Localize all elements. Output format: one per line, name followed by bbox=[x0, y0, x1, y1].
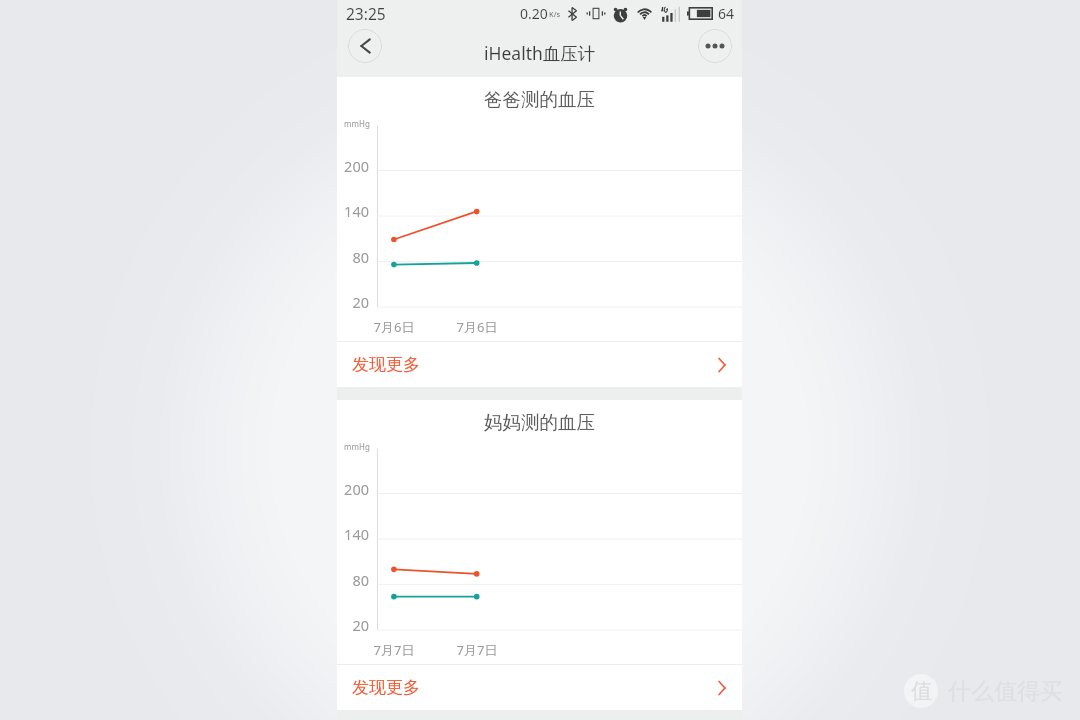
staticText: 200 bbox=[337, 156, 369, 176]
staticText: 200 bbox=[337, 479, 369, 499]
staticText: 80 bbox=[337, 247, 369, 267]
staticText: 7月6日 bbox=[447, 318, 507, 336]
staticText: iHealth血压计 bbox=[484, 41, 596, 65]
staticText: 140 bbox=[337, 524, 369, 544]
staticText: 20 bbox=[337, 615, 369, 635]
staticText: 什么值得买 bbox=[948, 677, 1063, 706]
button[interactable]: Back bbox=[348, 29, 382, 63]
staticText: 23:25 bbox=[346, 3, 386, 24]
staticText: 0.20 bbox=[520, 4, 548, 23]
staticText: 爸爸测的血压 bbox=[484, 88, 595, 111]
button[interactable]: More options bbox=[698, 29, 732, 63]
staticText: mmHg bbox=[344, 118, 370, 129]
staticText: 值 bbox=[911, 678, 932, 704]
staticText: K/s bbox=[549, 9, 561, 19]
staticText: 7月7日 bbox=[447, 641, 507, 659]
staticText: 7月7日 bbox=[364, 641, 424, 659]
staticText: 140 bbox=[337, 201, 369, 221]
button[interactable]: 发现更多 bbox=[337, 665, 742, 710]
staticText: 发现更多 bbox=[352, 354, 420, 375]
staticText: 80 bbox=[337, 570, 369, 590]
staticText: 64 bbox=[718, 4, 735, 23]
staticText: 妈妈测的血压 bbox=[484, 411, 595, 434]
staticText: 发现更多 bbox=[352, 677, 420, 698]
staticText: mmHg bbox=[344, 441, 370, 452]
staticText: 7月6日 bbox=[364, 318, 424, 336]
button[interactable]: 发现更多 bbox=[337, 342, 742, 387]
staticText: 20 bbox=[337, 292, 369, 312]
